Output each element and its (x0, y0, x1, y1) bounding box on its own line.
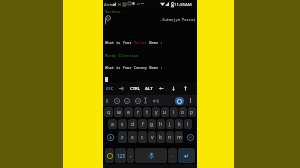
button[interactable]: Space (135, 148, 167, 163)
staticText: . (172, 152, 174, 159)
staticText: 11:35AM (174, 1, 192, 7)
staticText: 123 (117, 153, 125, 159)
staticText: -Sutarjya Parixi (160, 17, 196, 22)
staticText: m (177, 134, 182, 141)
button[interactable]: Up (181, 82, 190, 95)
staticText: n (168, 134, 172, 141)
button[interactable]: s (118, 119, 127, 129)
button[interactable]: b (157, 131, 165, 143)
staticText: k (178, 121, 181, 128)
staticText: t (146, 109, 148, 116)
button[interactable]: Emoji picker (175, 97, 184, 105)
button[interactable]: Shift (104, 131, 117, 143)
button[interactable]: Emoji (105, 148, 114, 163)
staticText: CTRL (130, 86, 141, 92)
staticText: l (187, 121, 189, 128)
button[interactable]: g (148, 119, 156, 129)
button[interactable]: Backspace (184, 131, 196, 143)
staticText: b (159, 134, 163, 141)
button[interactable]: u (161, 107, 169, 117)
button[interactable]: Left (157, 82, 166, 95)
button[interactable]: j (166, 119, 174, 129)
staticText: ↵ (184, 152, 190, 159)
button[interactable]: x (128, 131, 137, 143)
staticText: ALT (145, 86, 153, 92)
staticText: o (181, 109, 185, 116)
button[interactable]: p (188, 107, 196, 117)
button[interactable]: , (127, 148, 134, 163)
button[interactable]: e (124, 107, 133, 117)
button[interactable]: o (179, 107, 187, 117)
button[interactable]: w (114, 107, 123, 117)
staticText: x (131, 134, 134, 141)
button[interactable]: 123 (115, 148, 126, 163)
button[interactable]: ESC (105, 82, 115, 95)
staticText: What is Your Hacker Name : (105, 40, 163, 45)
button[interactable]: f (138, 119, 147, 129)
button[interactable]: h (157, 119, 165, 129)
staticText: Moody Ellectron (105, 53, 139, 58)
staticText: w (117, 109, 121, 116)
staticText: s (121, 121, 124, 128)
button[interactable]: Down (169, 82, 178, 95)
button[interactable]: Enter (178, 148, 195, 163)
staticText: g (150, 121, 154, 128)
staticText: v (151, 134, 154, 141)
staticText: u (163, 109, 167, 116)
button[interactable]: Emoji (122, 95, 131, 106)
staticText: p (190, 109, 194, 116)
button[interactable]: . (168, 148, 177, 163)
staticText: i (173, 109, 175, 116)
button[interactable]: c (138, 131, 147, 143)
button[interactable]: Tab (117, 82, 125, 95)
button[interactable]: q (104, 107, 113, 117)
button[interactable]: t (143, 107, 151, 117)
staticText: d (131, 121, 135, 128)
button[interactable]: Move cursor (152, 95, 159, 106)
button[interactable]: z (118, 131, 127, 143)
button[interactable]: i (170, 107, 178, 117)
staticText: What is Your Convoy Name : (105, 65, 163, 70)
button[interactable]: n (166, 131, 174, 143)
staticText: ESC (106, 86, 114, 92)
staticText: , (130, 152, 132, 159)
button[interactable]: l (184, 119, 192, 129)
button[interactable]: r (134, 107, 142, 117)
staticText: y (155, 109, 158, 116)
button[interactable]: v (148, 131, 156, 143)
button[interactable]: m (175, 131, 183, 143)
button[interactable]: Text (143, 95, 148, 106)
staticText: Hackers... (105, 9, 128, 14)
staticText: q (107, 109, 111, 116)
button[interactable]: k (175, 119, 183, 129)
button[interactable]: CTRL (129, 82, 142, 95)
staticText: r (137, 109, 140, 116)
button[interactable]: y (152, 107, 160, 117)
staticText: h (159, 121, 163, 128)
staticText: f (142, 121, 144, 128)
button[interactable]: ALT (144, 82, 154, 95)
staticText: a (111, 121, 114, 128)
button[interactable]: a (108, 119, 117, 129)
staticText: e (127, 109, 130, 116)
button[interactable]: Emoji (112, 95, 121, 106)
staticText: z (121, 134, 124, 141)
button[interactable]: More (187, 95, 194, 106)
staticText: c (141, 134, 144, 141)
button[interactable]: Clipboard (104, 95, 109, 106)
staticText: Airtel (104, 2, 115, 8)
button[interactable]: d (128, 119, 137, 129)
button[interactable]: Emoji (133, 95, 142, 106)
staticText: j (169, 121, 171, 128)
